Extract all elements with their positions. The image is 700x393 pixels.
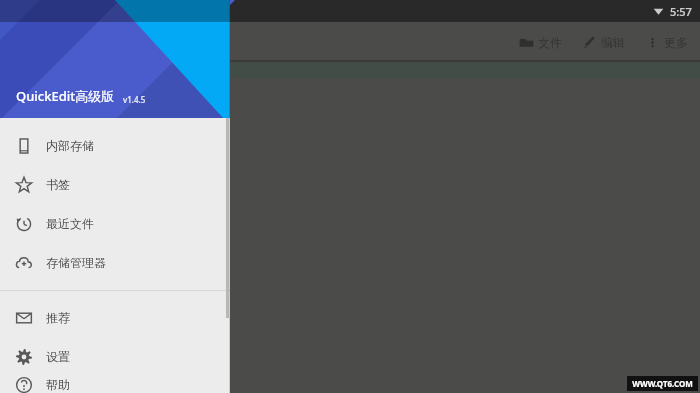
button[interactable]: 推荐 [0,298,230,337]
other: 文件 [519,35,534,50]
button[interactable]: 文件 [517,29,564,56]
staticText: 帮助 [46,377,70,392]
staticText: 存储管理器 [46,255,106,270]
button[interactable]: 内部存储 [0,126,230,165]
staticText: 推荐 [46,310,70,325]
staticText: 书签 [46,177,70,192]
staticText: QuickEdit高级版 [16,87,115,105]
staticText: 更多 [664,35,688,50]
staticText: WWW.QT6.COM [632,378,693,389]
staticText: 最近文件 [46,216,94,231]
staticText: 5:57 [670,4,692,19]
button[interactable]: 编辑 [580,29,627,56]
staticText: v1.4.5 [123,94,146,105]
staticText: 文件 [538,35,562,50]
staticText: 设置 [46,349,70,364]
other: 更多 [645,35,660,50]
staticText: 内部存储 [46,138,94,153]
button[interactable]: 书签 [0,165,230,204]
button[interactable]: 最近文件 [0,204,230,243]
staticText: 编辑 [601,35,625,50]
button[interactable]: 设置 [0,337,230,376]
button[interactable]: 帮助 [0,376,230,393]
button[interactable]: 更多 [643,29,690,56]
other: 编辑 [582,35,597,50]
button[interactable]: 存储管理器 [0,243,230,282]
